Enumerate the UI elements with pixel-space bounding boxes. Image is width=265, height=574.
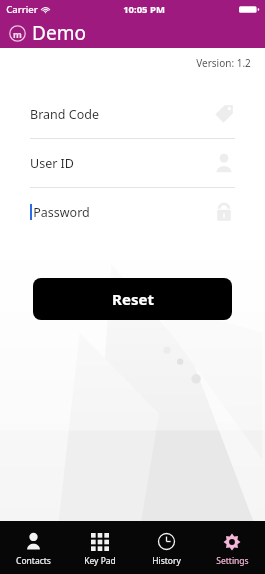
button[interactable]: History: [133, 521, 199, 574]
button[interactable]: User ID: [30, 139, 235, 187]
button[interactable]: Reset: [33, 278, 232, 320]
button[interactable]: Key Pad: [67, 521, 133, 574]
staticText: Password: [33, 204, 90, 221]
button[interactable]: Password: [30, 188, 235, 236]
staticText: Brand Code: [30, 106, 99, 123]
staticText: Carrier: [6, 3, 38, 16]
staticText: 10:05 PM: [123, 3, 165, 16]
staticText: Reset: [112, 289, 154, 309]
button[interactable]: Contacts: [0, 521, 67, 574]
staticText: History: [152, 555, 181, 567]
staticText: Demo: [32, 20, 86, 46]
staticText: m: [13, 28, 22, 40]
button[interactable]: Settings: [199, 521, 265, 574]
button[interactable]: Brand Code: [30, 90, 235, 138]
staticText: Key Pad: [84, 555, 116, 567]
staticText: Settings: [216, 555, 249, 567]
staticText: Version: 1.2: [196, 56, 251, 70]
staticText: Contacts: [16, 555, 51, 567]
staticText: User ID: [30, 155, 74, 172]
